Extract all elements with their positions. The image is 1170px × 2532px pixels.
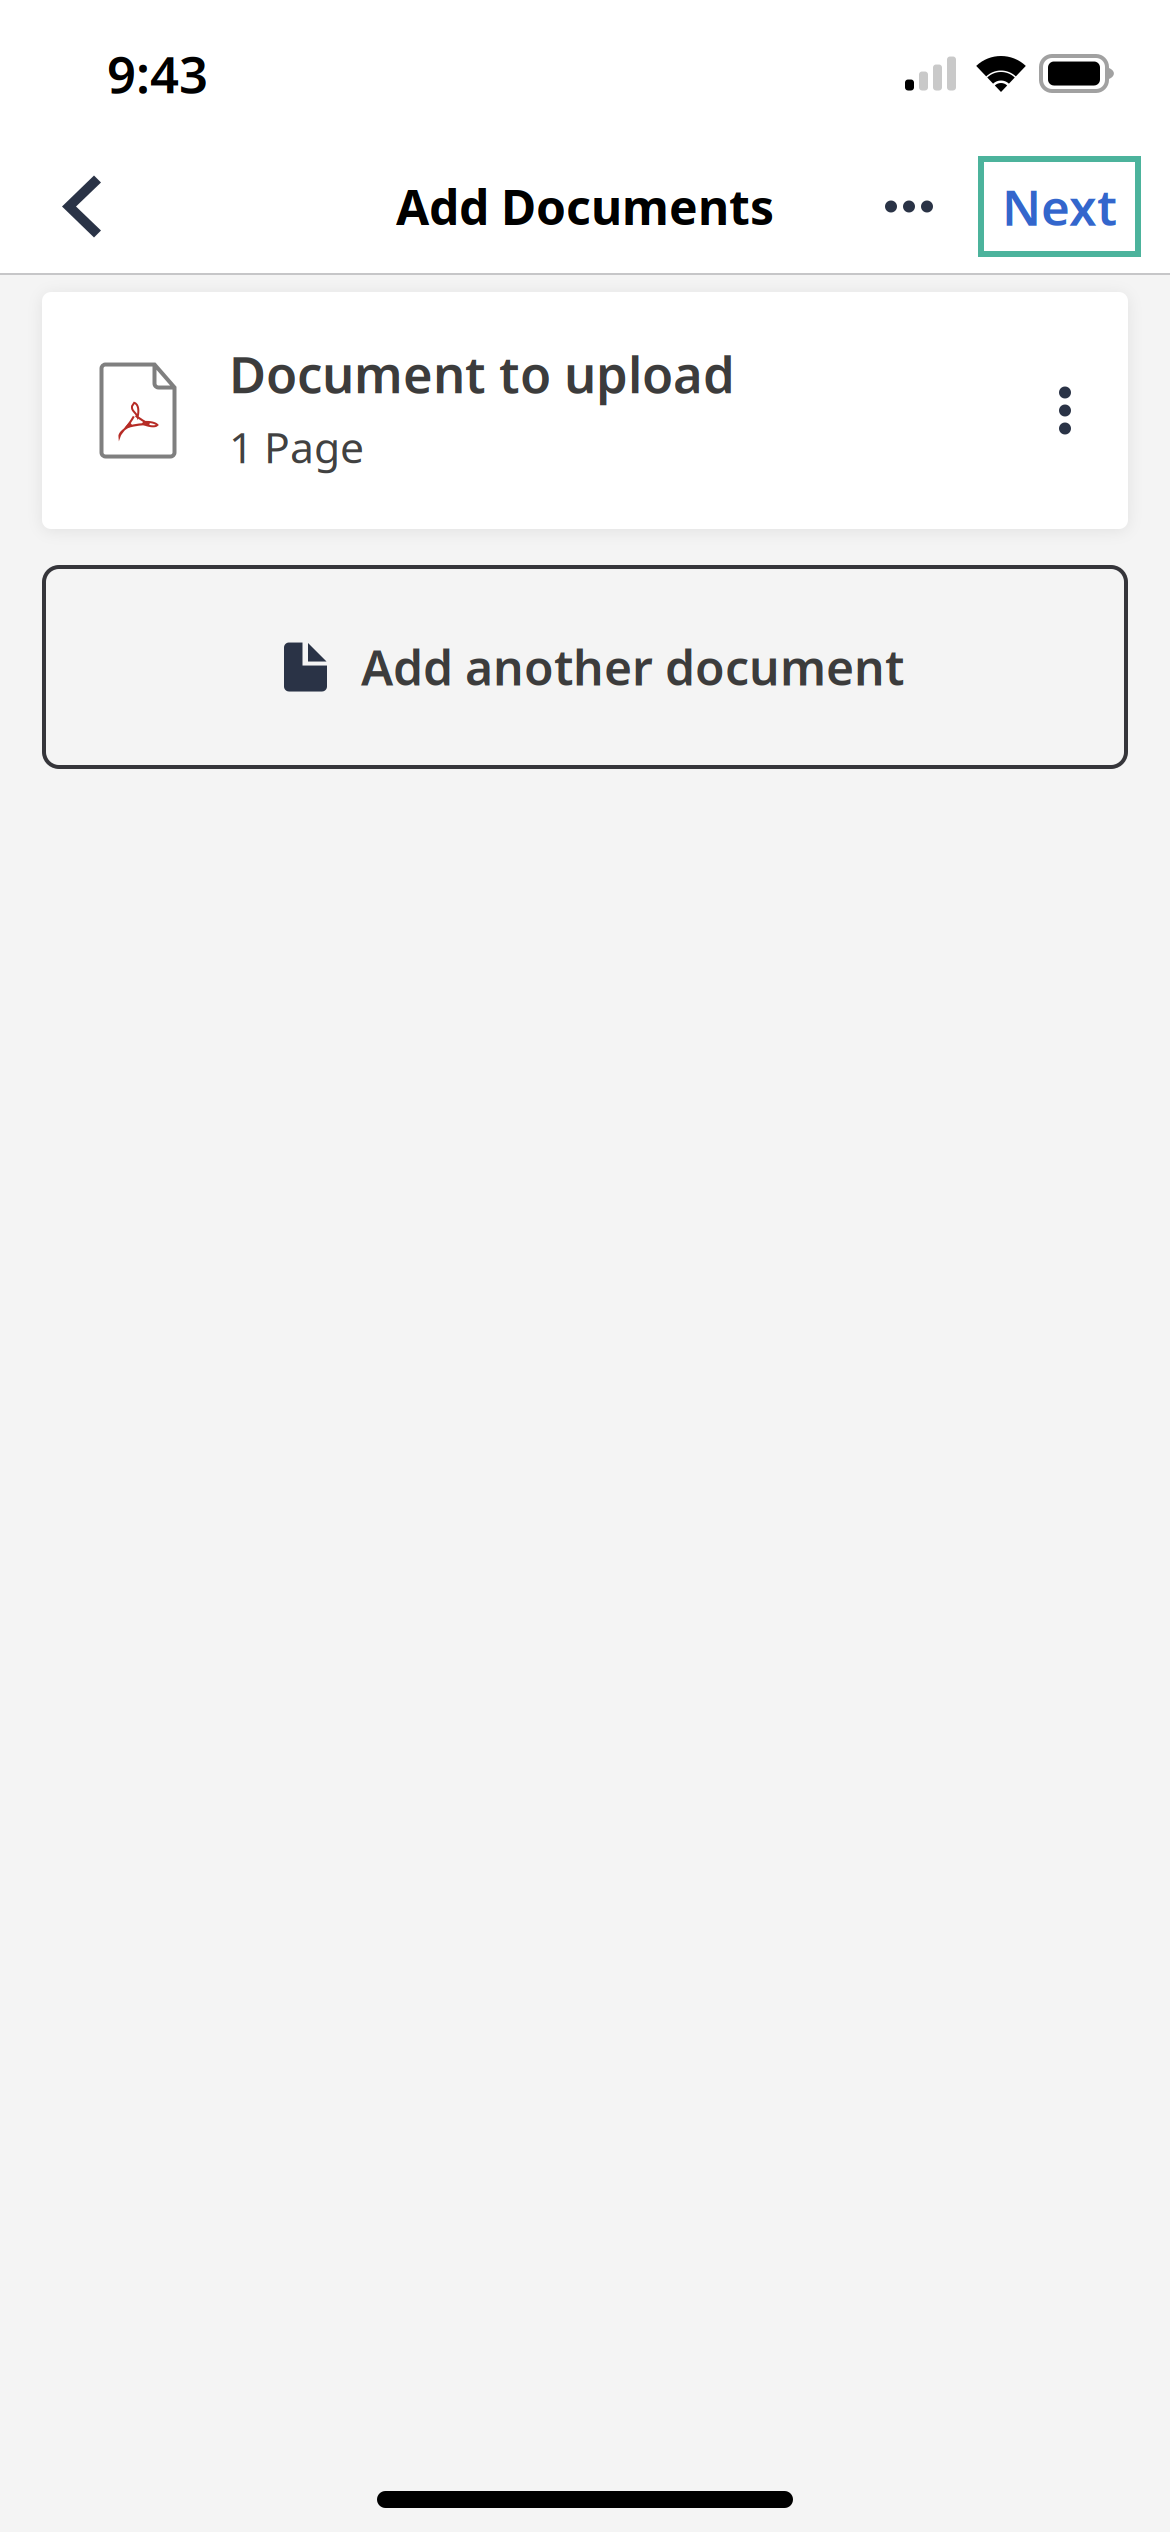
- staticText: 1 Page: [229, 418, 364, 475]
- staticText: Add Documents: [396, 175, 774, 238]
- staticText: 9:43: [107, 40, 208, 107]
- button[interactable]: Next: [981, 159, 1138, 254]
- button[interactable]: More options: [861, 140, 957, 272]
- staticText: Next: [1002, 174, 1117, 239]
- button[interactable]: Add another document: [42, 565, 1128, 769]
- staticText: Document to upload: [229, 340, 735, 407]
- button[interactable]: Back: [19, 140, 101, 272]
- button[interactable]: Document to upload: [42, 292, 1128, 529]
- staticText: Add another document: [361, 635, 904, 699]
